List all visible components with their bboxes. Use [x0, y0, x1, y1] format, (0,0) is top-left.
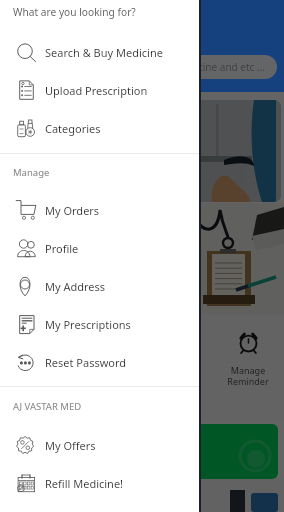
button[interactable]: [196, 424, 278, 479]
staticText: Search medicine and etc ...: [140, 60, 265, 74]
button[interactable]: [0, 203, 284, 314]
staticText: Manage: [13, 166, 50, 179]
staticText: Profile: [45, 241, 79, 256]
button[interactable]: My Prescriptions: [0, 305, 199, 343]
staticText: What are you looking for?: [13, 5, 136, 19]
staticText: Categories: [45, 121, 101, 136]
staticText: Reset Password: [45, 355, 127, 370]
staticText: Search & Buy Medicine: [45, 45, 163, 60]
staticText: My Offers: [45, 438, 96, 453]
button[interactable]: Profile: [0, 229, 199, 267]
staticText: Upload Prescription: [45, 83, 148, 98]
staticText: My Prescriptions: [45, 317, 131, 332]
button[interactable]: Refill Medicine!: [0, 464, 199, 502]
button[interactable]: Reset Password: [0, 343, 199, 381]
button[interactable]: Upload Prescription: [0, 71, 199, 109]
staticText: Refill Medicine!: [45, 476, 124, 491]
button[interactable]: Manage Reminder: [222, 332, 274, 408]
staticText: Manage Reminder: [227, 364, 269, 388]
button[interactable]: My Address: [0, 267, 199, 305]
staticText: My Address: [45, 279, 106, 294]
button[interactable]: Search & Buy Medicine: [0, 33, 199, 71]
button[interactable]: My Orders: [0, 191, 199, 229]
button[interactable]: My Offers: [0, 426, 199, 464]
staticText: AJ VASTAR MED: [13, 400, 82, 413]
button[interactable]: Search medicine and etc ...: [130, 55, 277, 79]
button[interactable]: Categories: [0, 109, 199, 147]
button[interactable]: [150, 100, 281, 202]
staticText: My Orders: [45, 203, 100, 218]
